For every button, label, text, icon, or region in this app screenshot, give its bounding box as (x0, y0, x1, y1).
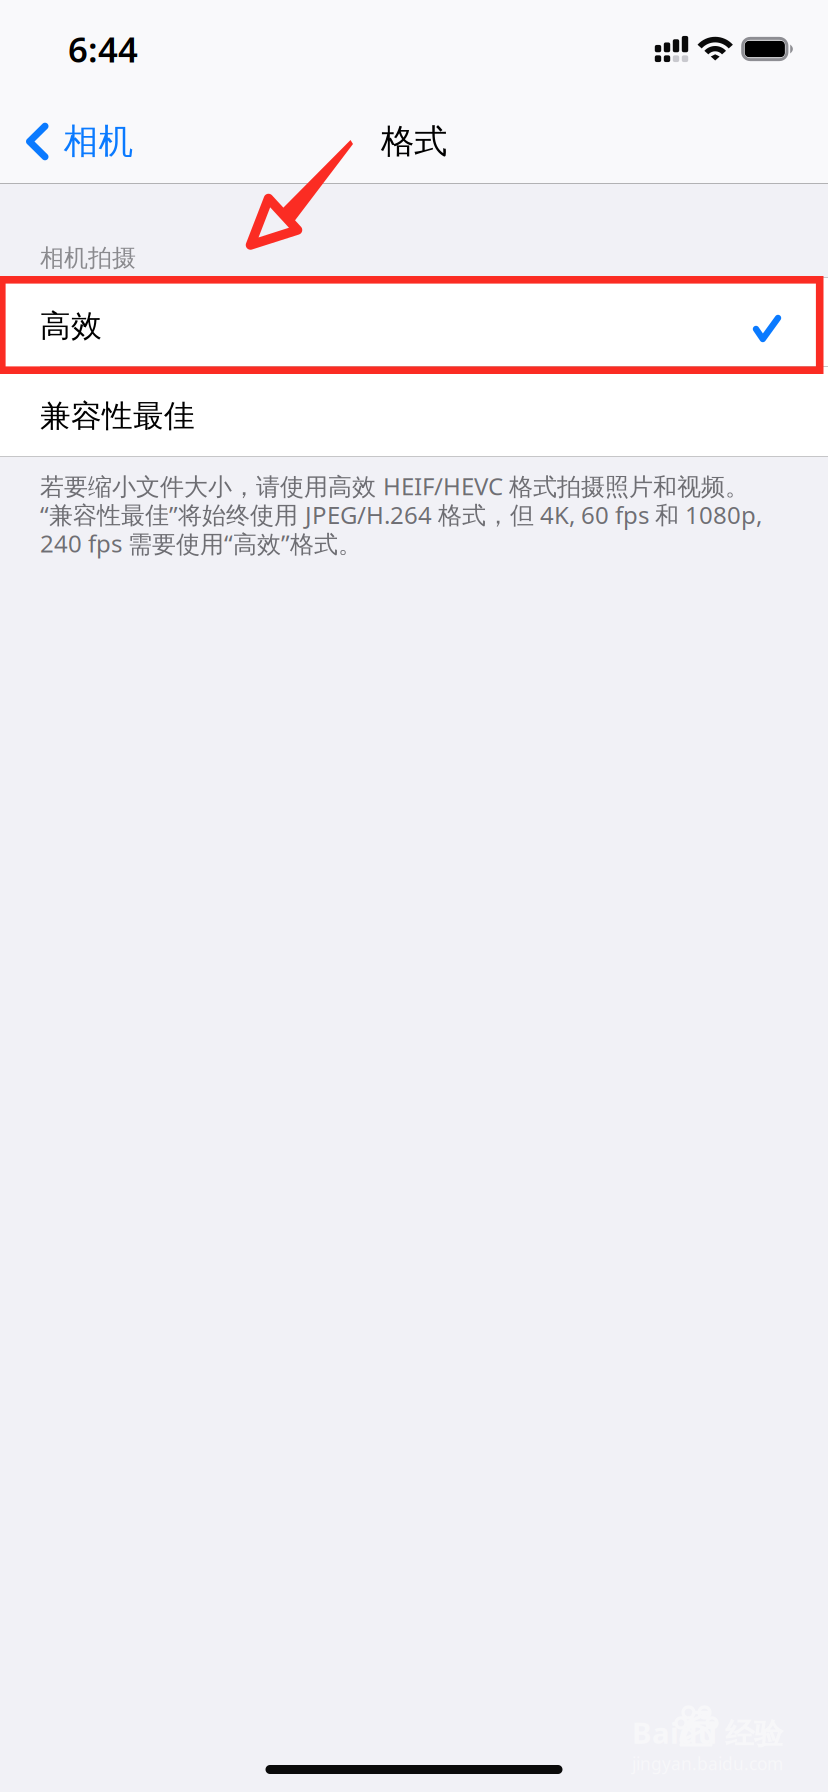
button[interactable]: 兼容性最佳 (0, 367, 828, 457)
staticText: 相机 (63, 120, 133, 163)
staticText: 6:44 (68, 26, 138, 72)
staticText: 格式 (381, 121, 447, 162)
button[interactable]: 高效 (0, 277, 828, 367)
button[interactable]: 相机 (0, 88, 151, 184)
staticText: 兼容性最佳 (40, 397, 195, 435)
staticText: 若要缩小文件大小，请使用高效 HEIF/HEVC 格式拍摄照片和视频。 “兼容性… (40, 470, 762, 559)
staticText: 相机拍摄 (40, 243, 136, 273)
staticText: 高效 (40, 307, 102, 345)
